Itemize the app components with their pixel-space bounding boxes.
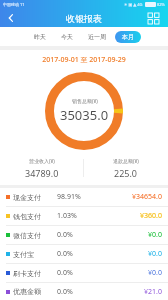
button[interactable]: 优惠金额	[0, 283, 168, 300]
staticText: ¥21.0	[118, 287, 162, 297]
staticText: 34789.0	[25, 167, 59, 179]
staticText: 0.0%	[57, 230, 118, 240]
button[interactable]: 近一周	[82, 31, 112, 43]
button[interactable]: 今天	[55, 31, 79, 43]
staticText: 35035.0	[60, 106, 109, 124]
staticText: ✶ ▣ ▲ 4G	[124, 2, 143, 7]
staticText: 0.0%	[57, 268, 118, 278]
staticText: 本月	[122, 33, 134, 41]
staticText: 昨天	[34, 33, 46, 41]
button[interactable]: 微信支付	[0, 226, 168, 244]
staticText: 0.0%	[57, 249, 118, 259]
staticText: 近一周	[88, 33, 106, 41]
staticText: 中国移动 11	[3, 2, 25, 7]
button[interactable]: Grid menu	[144, 9, 162, 27]
staticText: 2017-09-01 至 2017-09-29	[0, 55, 168, 65]
staticText: 刷卡支付	[13, 269, 57, 278]
button[interactable]: 刷卡支付	[0, 264, 168, 282]
staticText: 98.91%	[57, 192, 118, 202]
staticText: ¥0.0	[118, 249, 162, 259]
staticText: 营业收入(¥)	[29, 158, 55, 165]
staticText: ¥0.0	[118, 268, 162, 278]
staticText: 微信支付	[13, 231, 57, 240]
button[interactable]: 昨天	[28, 31, 52, 43]
staticText: 优惠金额	[13, 287, 57, 296]
button[interactable]: 钱包支付	[0, 207, 168, 225]
staticText: 0.0%	[57, 287, 118, 297]
staticText: 1.03%	[57, 211, 118, 221]
staticText: 现金支付	[13, 193, 57, 202]
staticText: 收银报表	[66, 13, 102, 24]
button[interactable]: 支付宝	[0, 245, 168, 263]
staticText: 钱包支付	[13, 212, 57, 221]
staticText: ¥360.0	[118, 211, 162, 221]
staticText: 82%	[157, 2, 165, 7]
staticText: ¥34654.0	[118, 192, 162, 202]
staticText: 销售总额(¥)	[72, 98, 98, 105]
staticText: 今天	[61, 33, 73, 41]
staticText: 支付宝	[13, 250, 57, 259]
button[interactable]: Back	[0, 9, 22, 27]
staticText: ¥0.0	[118, 230, 162, 240]
button[interactable]: 本月	[115, 31, 141, 43]
button[interactable]: 现金支付	[0, 188, 168, 206]
staticText: 225.0	[114, 167, 138, 179]
staticText: 退款总额(¥)	[113, 158, 139, 165]
